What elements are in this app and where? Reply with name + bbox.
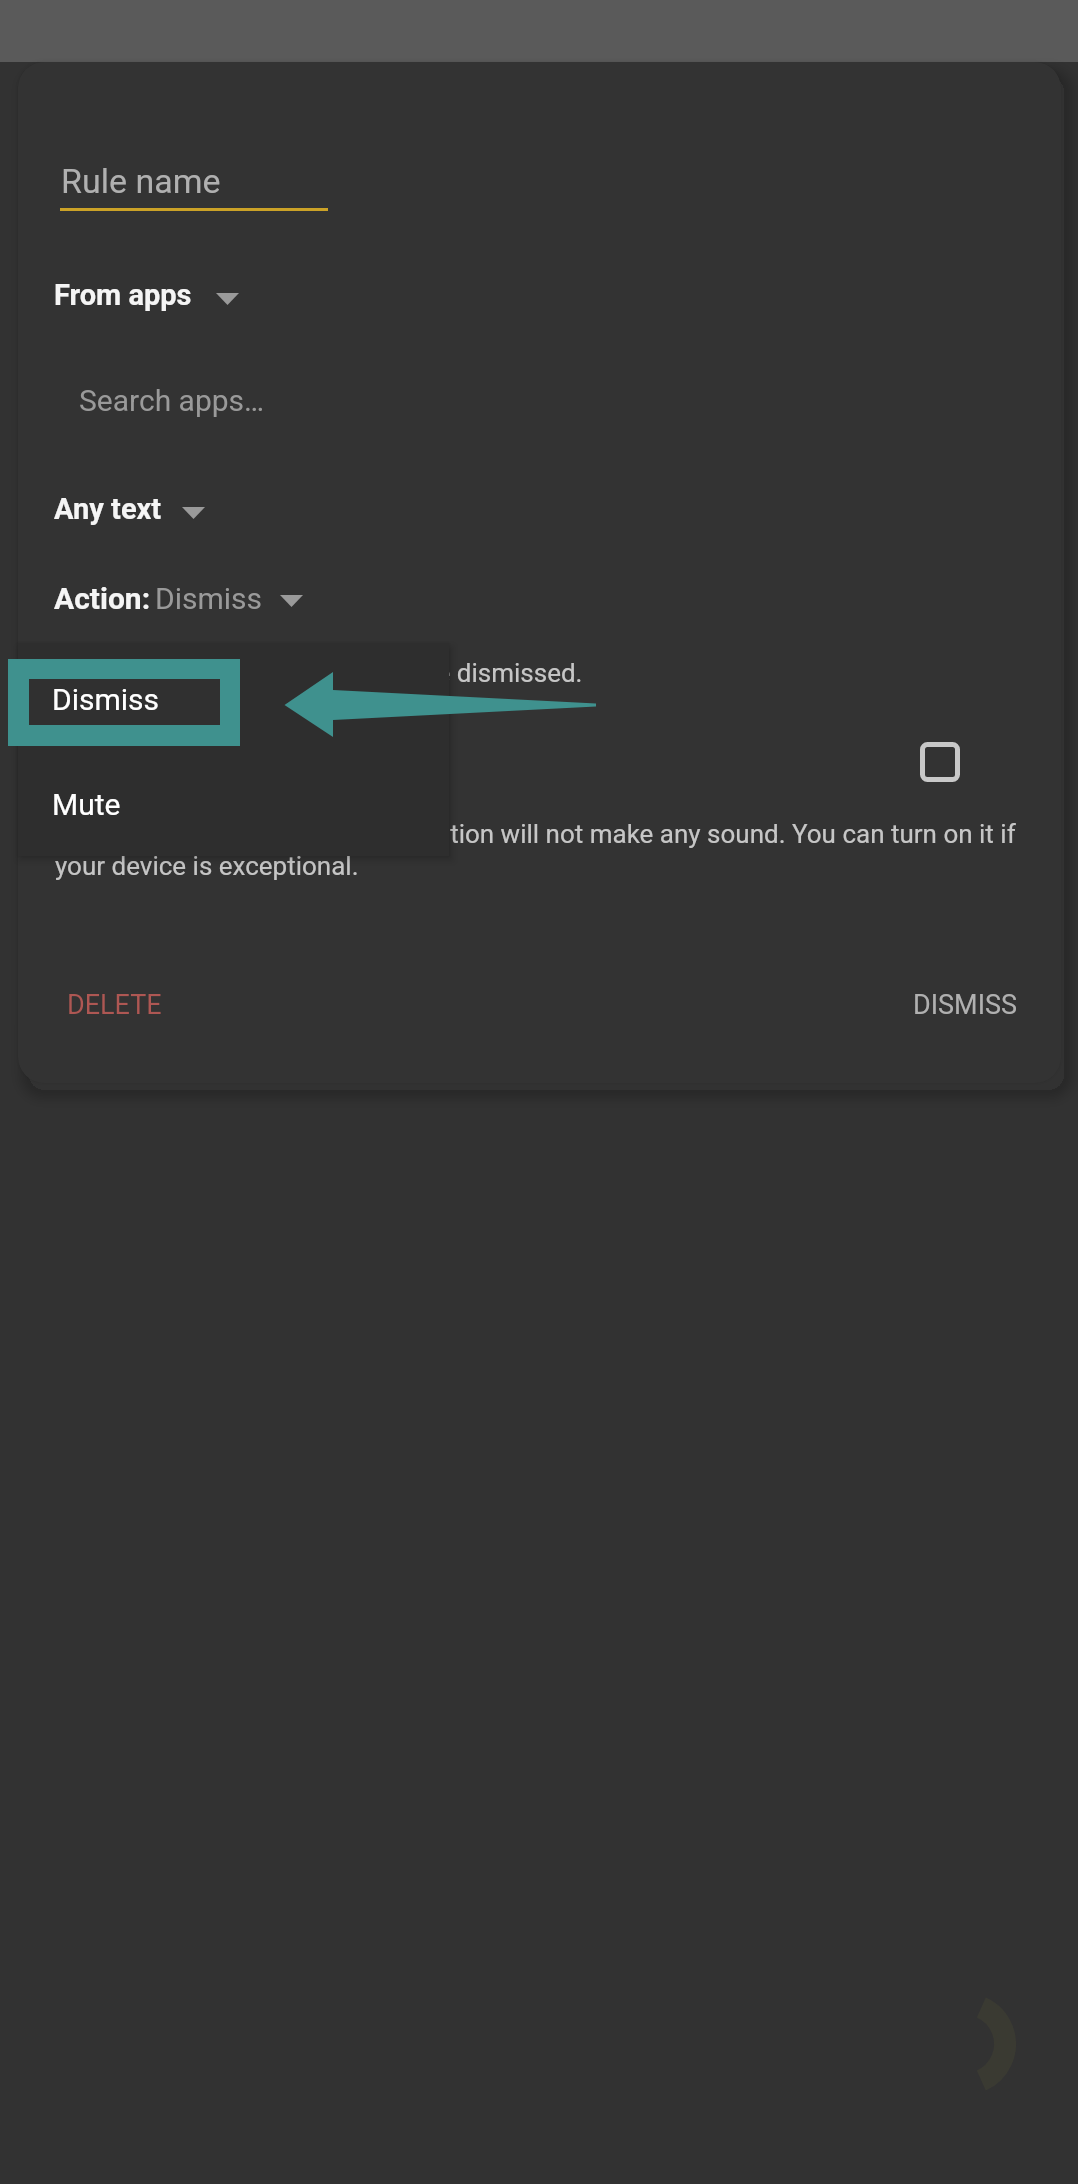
staticText: Mute	[52, 787, 121, 822]
button[interactable]: Any text	[54, 481, 205, 537]
other: Do not play sound checkbox	[920, 742, 960, 782]
staticText: From apps	[54, 278, 192, 312]
button[interactable]: Mute	[18, 751, 449, 856]
button[interactable]: Dismiss	[18, 643, 449, 751]
staticText: When matched, notification will be dismi…	[55, 658, 583, 688]
button[interactable]: From apps	[54, 267, 239, 323]
staticText: Any text	[54, 492, 162, 526]
staticText: DELETE	[67, 989, 162, 1021]
button[interactable]: DELETE	[43, 969, 186, 1041]
staticText: Search apps…	[79, 383, 265, 418]
button[interactable]: Rule name	[40, 148, 330, 212]
staticText: When muted, the matched notification wil…	[55, 819, 1035, 881]
staticText: Dismiss	[52, 682, 160, 717]
staticText: DISMISS	[913, 989, 1018, 1021]
button[interactable]: Add rule	[914, 1993, 1016, 2095]
button[interactable]: Action:	[54, 570, 303, 626]
staticText: Dismiss	[155, 581, 263, 616]
staticText: Rule name	[61, 161, 221, 201]
button[interactable]: Do not play sound	[55, 722, 960, 802]
staticText: Dismiss	[52, 682, 160, 717]
staticText: Action:	[54, 581, 151, 616]
button[interactable]: DISMISS	[889, 969, 1042, 1041]
button[interactable]: Search apps…	[58, 366, 1061, 430]
